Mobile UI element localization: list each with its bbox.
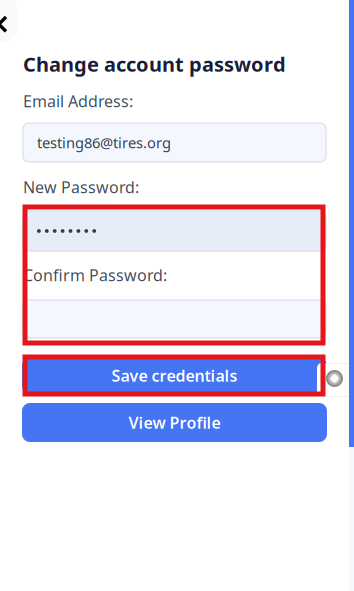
button[interactable]: Back: [0, 0, 17, 42]
staticText: View Profile: [128, 412, 220, 433]
staticText: Change account password: [23, 51, 286, 77]
staticText: Email Address:: [23, 90, 133, 112]
button[interactable]: Save credentials: [22, 359, 327, 392]
staticText: New Password:: [23, 176, 139, 198]
button[interactable]: View Profile: [22, 403, 327, 442]
staticText: Confirm Password:: [23, 264, 167, 286]
staticText: testing86@tires.org: [37, 133, 171, 152]
staticText: Save credentials: [111, 365, 237, 386]
